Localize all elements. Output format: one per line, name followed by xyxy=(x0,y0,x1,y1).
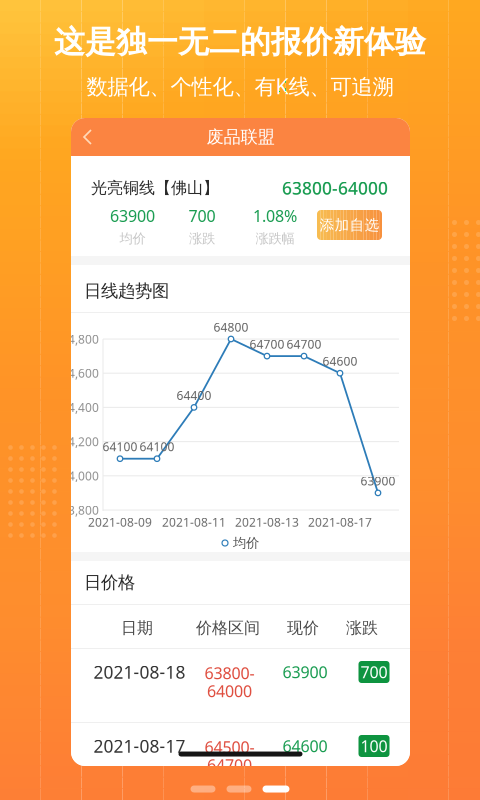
staticText: 日期 xyxy=(121,618,153,638)
staticText: 63800- xyxy=(204,662,254,684)
staticText: 2021-08-18 xyxy=(93,660,185,683)
staticText: 这是独一无二的报价新体验 xyxy=(54,23,426,61)
staticText: 64700 xyxy=(286,336,321,352)
staticText: 64100 xyxy=(139,439,174,455)
button[interactable]: Back xyxy=(71,118,105,156)
staticText: 2021-08-09 xyxy=(88,514,152,530)
staticText: 64800 xyxy=(213,319,248,335)
staticText: 均价 xyxy=(119,230,145,247)
staticText: 涨跌 xyxy=(346,618,378,638)
staticText: 日价格 xyxy=(84,572,135,593)
staticText: 光亮铜线【佛山】 xyxy=(91,178,219,198)
staticText: 64700 xyxy=(207,754,252,776)
staticText: 数据化、个性化、有K线、可追溯 xyxy=(86,72,393,100)
staticText: 64600 xyxy=(322,353,357,369)
staticText: 均价 xyxy=(233,535,259,551)
staticText: 添加自选 xyxy=(319,216,379,234)
staticText: 2021-08-13 xyxy=(235,514,299,530)
staticText: 700 xyxy=(360,661,387,683)
staticText: 64100 xyxy=(102,439,137,455)
staticText: 64,400 xyxy=(61,399,99,415)
staticText: 100 xyxy=(360,735,387,757)
staticText: 2021-08-11 xyxy=(162,514,226,530)
staticText: 63,800 xyxy=(61,502,99,518)
staticText: 涨跌幅 xyxy=(255,230,294,247)
staticText: 现价 xyxy=(287,618,319,638)
staticText: 64,800 xyxy=(61,331,99,347)
staticText: 64700 xyxy=(249,336,284,352)
staticText: 700 xyxy=(188,205,215,226)
staticText: 2021-08-17 xyxy=(308,514,372,530)
staticText: 64,200 xyxy=(61,434,99,449)
staticText: 63900 xyxy=(360,473,395,489)
staticText: 涨跌 xyxy=(189,230,215,247)
staticText: 价格区间 xyxy=(196,618,260,638)
staticText: 64400 xyxy=(176,387,211,403)
staticText: 64,000 xyxy=(61,468,99,484)
staticText: 1.08% xyxy=(253,205,297,226)
staticText: 64600 xyxy=(282,735,327,757)
staticText: 64,600 xyxy=(61,365,99,381)
staticText: 64500- xyxy=(204,736,254,758)
button[interactable]: 添加自选 xyxy=(317,210,382,240)
staticText: 废品联盟 xyxy=(206,126,274,148)
staticText: 2021-08-17 xyxy=(93,734,185,757)
staticText: 63900 xyxy=(282,661,327,683)
staticText: 63900 xyxy=(110,205,155,226)
staticText: 63800-64000 xyxy=(282,176,388,199)
staticText: 日线趋势图 xyxy=(84,280,169,302)
staticText: 64000 xyxy=(207,680,252,702)
